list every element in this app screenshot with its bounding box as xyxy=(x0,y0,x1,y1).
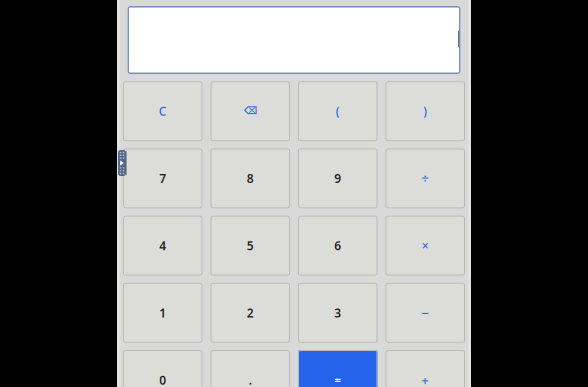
staticText: − xyxy=(421,304,429,322)
staticText: = xyxy=(334,372,341,387)
button[interactable]: . xyxy=(210,350,290,387)
staticText: 7 xyxy=(159,170,166,186)
button[interactable]: 1 xyxy=(123,283,202,343)
button[interactable]: 0 xyxy=(123,350,202,387)
staticText: + xyxy=(421,371,429,387)
staticText: 0 xyxy=(159,372,166,387)
button[interactable]: Delete xyxy=(210,81,290,141)
button[interactable]: 2 xyxy=(210,283,290,343)
staticText: 3 xyxy=(334,305,341,321)
button[interactable]: 3 xyxy=(298,283,377,343)
staticText: 4 xyxy=(159,238,166,253)
staticText: 5 xyxy=(247,238,254,253)
staticText: 9 xyxy=(334,170,341,186)
staticText: ) xyxy=(423,103,427,119)
staticText: C xyxy=(159,103,167,119)
staticText: × xyxy=(422,238,429,253)
button[interactable]: Open parenthesis xyxy=(298,81,377,141)
button[interactable]: Close parenthesis xyxy=(385,81,465,141)
button[interactable]: Clear xyxy=(123,81,202,141)
button[interactable]: Open keypad drawer xyxy=(118,150,127,176)
button[interactable]: Multiply xyxy=(385,216,465,276)
staticText: 2 xyxy=(247,305,254,321)
button[interactable]: 8 xyxy=(210,148,290,208)
button[interactable]: 4 xyxy=(123,216,202,276)
staticText: ÷ xyxy=(421,169,429,187)
button[interactable]: Subtract xyxy=(385,283,465,343)
button[interactable]: 7 xyxy=(123,148,202,208)
button[interactable]: 9 xyxy=(298,148,377,208)
button[interactable]: Add xyxy=(385,350,465,387)
staticText: 8 xyxy=(247,170,254,186)
button[interactable]: Equals xyxy=(298,350,377,387)
staticText: . xyxy=(249,372,252,387)
staticText: 6 xyxy=(334,238,341,253)
button[interactable]: 5 xyxy=(210,216,290,276)
staticText: 1 xyxy=(159,305,166,321)
button[interactable]: 6 xyxy=(298,216,377,276)
button[interactable]: Divide xyxy=(385,148,465,208)
staticText: ( xyxy=(336,103,340,119)
